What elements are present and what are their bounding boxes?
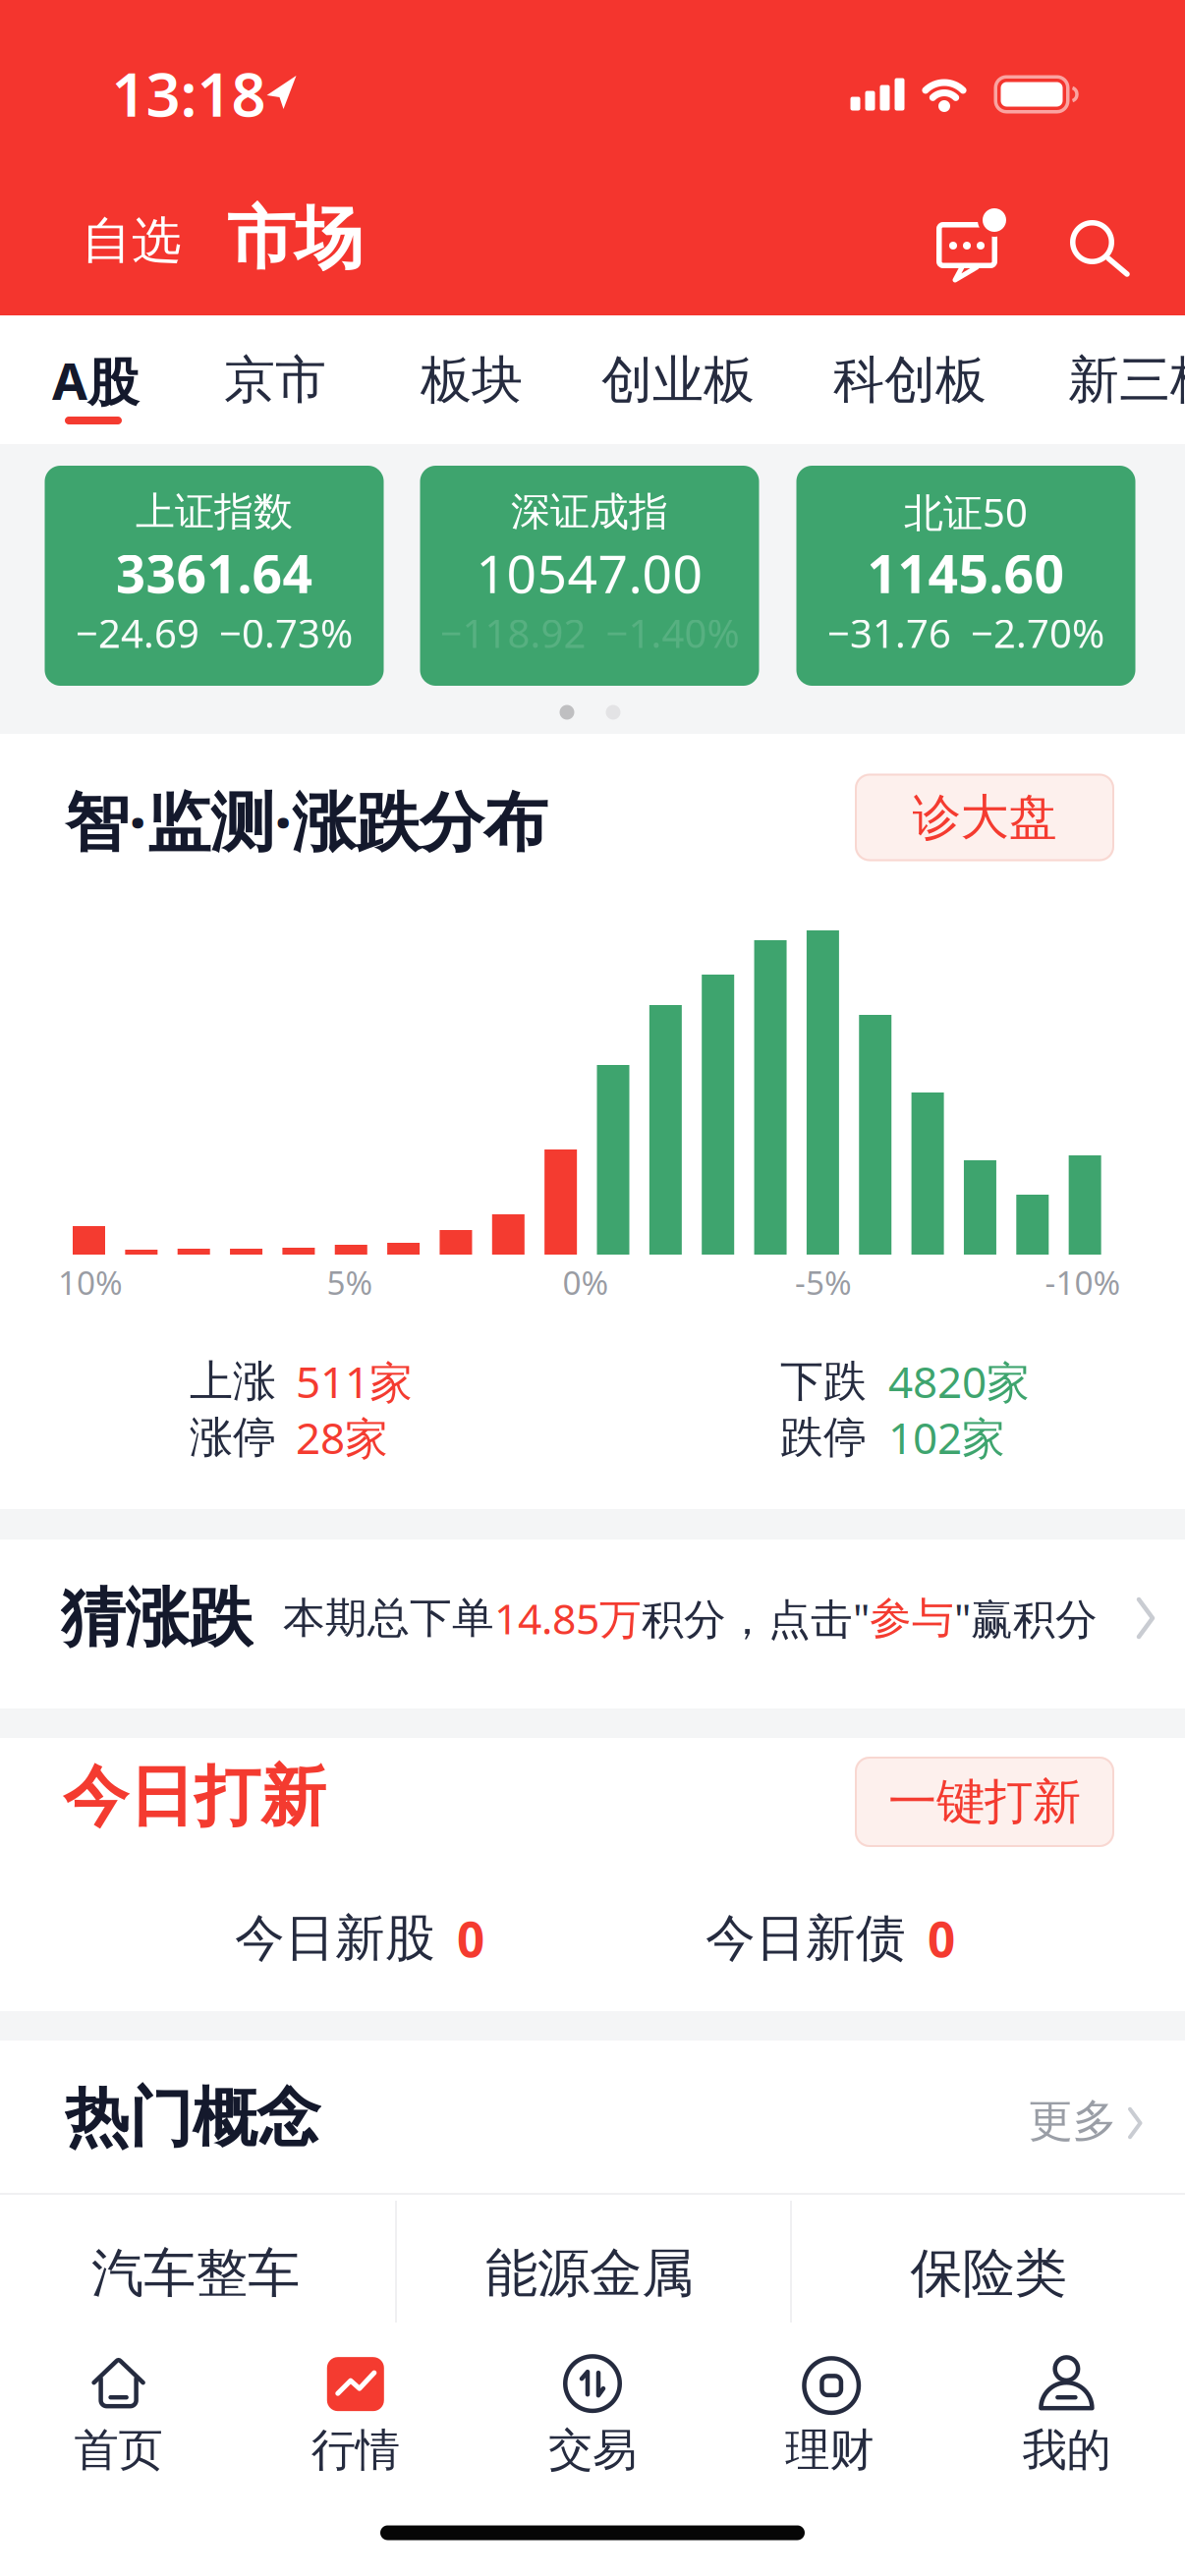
staticText: 诊大盘 bbox=[912, 788, 1057, 847]
staticText: 0 bbox=[457, 1906, 484, 1971]
button[interactable]: 北证50 bbox=[796, 466, 1135, 686]
staticText: −31.76 −2.70% bbox=[827, 607, 1104, 659]
staticText: 新三板 bbox=[1068, 349, 1185, 412]
staticText: 首页 bbox=[74, 2423, 163, 2478]
button[interactable]: 创业板 bbox=[601, 349, 755, 412]
staticText: 1145.60 bbox=[867, 538, 1065, 608]
staticText: 热门概念 bbox=[65, 2079, 320, 2158]
button[interactable]: 保险类 bbox=[910, 2241, 1067, 2306]
staticText: −118.92 −1.40% bbox=[440, 607, 739, 659]
staticText: 创业板 bbox=[601, 349, 755, 412]
button[interactable]: 首页 bbox=[0, 2346, 237, 2484]
button[interactable]: 猜涨跌 bbox=[0, 1540, 1185, 1708]
staticText: 积分，点击" bbox=[642, 1590, 870, 1646]
staticText: 汽车整车 bbox=[91, 2241, 300, 2306]
staticText: 市场 bbox=[227, 197, 363, 281]
staticText: 5% bbox=[327, 1260, 373, 1304]
staticText: 能源金属 bbox=[485, 2241, 694, 2306]
staticText: 深证成指 bbox=[511, 488, 668, 536]
staticText: 今日打新 bbox=[63, 1757, 326, 1837]
staticText: 跌停 bbox=[780, 1411, 867, 1464]
button[interactable]: 京市 bbox=[224, 349, 326, 412]
staticText: A股 bbox=[52, 346, 139, 414]
button[interactable]: 我的 bbox=[948, 2346, 1185, 2484]
staticText: 上涨 bbox=[190, 1355, 276, 1408]
staticText: 3361.64 bbox=[115, 538, 313, 608]
button[interactable]: 新三板 bbox=[1068, 349, 1185, 412]
button[interactable]: 深证成指 bbox=[420, 466, 759, 686]
staticText: 13:18 bbox=[112, 53, 266, 133]
staticText: 102家 bbox=[888, 1409, 1005, 1466]
button[interactable]: 理财 bbox=[711, 2346, 948, 2484]
staticText: 511家 bbox=[296, 1353, 413, 1410]
staticText: 更多 bbox=[1028, 2094, 1117, 2149]
staticText: 10% bbox=[58, 1260, 123, 1304]
staticText: 涨停 bbox=[190, 1411, 276, 1464]
staticText: 理财 bbox=[785, 2423, 874, 2478]
button[interactable]: 板块 bbox=[421, 349, 523, 412]
staticText: 科创板 bbox=[833, 349, 987, 412]
staticText: 板块 bbox=[421, 349, 523, 412]
button[interactable]: 搜索 bbox=[1070, 220, 1131, 275]
button[interactable]: 消息 bbox=[936, 211, 1005, 280]
staticText: 行情 bbox=[311, 2423, 400, 2478]
button[interactable]: 科创板 bbox=[833, 349, 987, 412]
staticText: 14.85万 bbox=[494, 1590, 642, 1646]
button[interactable]: 行情 bbox=[237, 2346, 474, 2484]
staticText: -5% bbox=[795, 1260, 852, 1304]
button[interactable]: A股 bbox=[52, 346, 139, 414]
staticText: 0% bbox=[563, 1260, 609, 1304]
button[interactable]: 一键打新 bbox=[855, 1757, 1114, 1847]
staticText: 交易 bbox=[548, 2423, 637, 2478]
button[interactable]: 自选 bbox=[82, 210, 182, 271]
staticText: 今日新股 bbox=[235, 1908, 435, 1969]
staticText: 4820家 bbox=[888, 1353, 1030, 1410]
staticText: 智·监测·涨跌分布 bbox=[65, 778, 547, 863]
staticText: "赢积分 bbox=[954, 1590, 1098, 1646]
staticText: 下跌 bbox=[780, 1355, 867, 1408]
staticText: -10% bbox=[1045, 1260, 1121, 1304]
staticText: 0 bbox=[928, 1906, 955, 1971]
button[interactable]: 上证指数 bbox=[45, 466, 384, 686]
button[interactable]: 能源金属 bbox=[485, 2241, 694, 2306]
staticText: 自选 bbox=[82, 210, 182, 271]
staticText: 京市 bbox=[224, 349, 326, 412]
staticText: 10547.00 bbox=[476, 538, 703, 608]
staticText: 上证指数 bbox=[136, 488, 293, 536]
button[interactable]: 诊大盘 bbox=[855, 774, 1114, 861]
staticText: 保险类 bbox=[910, 2241, 1067, 2306]
button[interactable]: 汽车整车 bbox=[91, 2241, 300, 2306]
button[interactable]: 市场 bbox=[227, 197, 363, 281]
staticText: 参与 bbox=[870, 1592, 954, 1644]
staticText: 今日新债 bbox=[705, 1908, 906, 1969]
staticText: 本期总下单 bbox=[283, 1592, 494, 1644]
staticText: 北证50 bbox=[904, 486, 1028, 538]
staticText: −24.69 −0.73% bbox=[76, 607, 353, 659]
button[interactable]: 交易 bbox=[474, 2346, 711, 2484]
staticText: 猜涨跌 bbox=[61, 1579, 253, 1658]
button[interactable]: 更多 bbox=[1028, 2094, 1143, 2149]
staticText: 28家 bbox=[296, 1409, 388, 1466]
staticText: 一键打新 bbox=[888, 1772, 1081, 1832]
staticText: 我的 bbox=[1022, 2423, 1111, 2478]
